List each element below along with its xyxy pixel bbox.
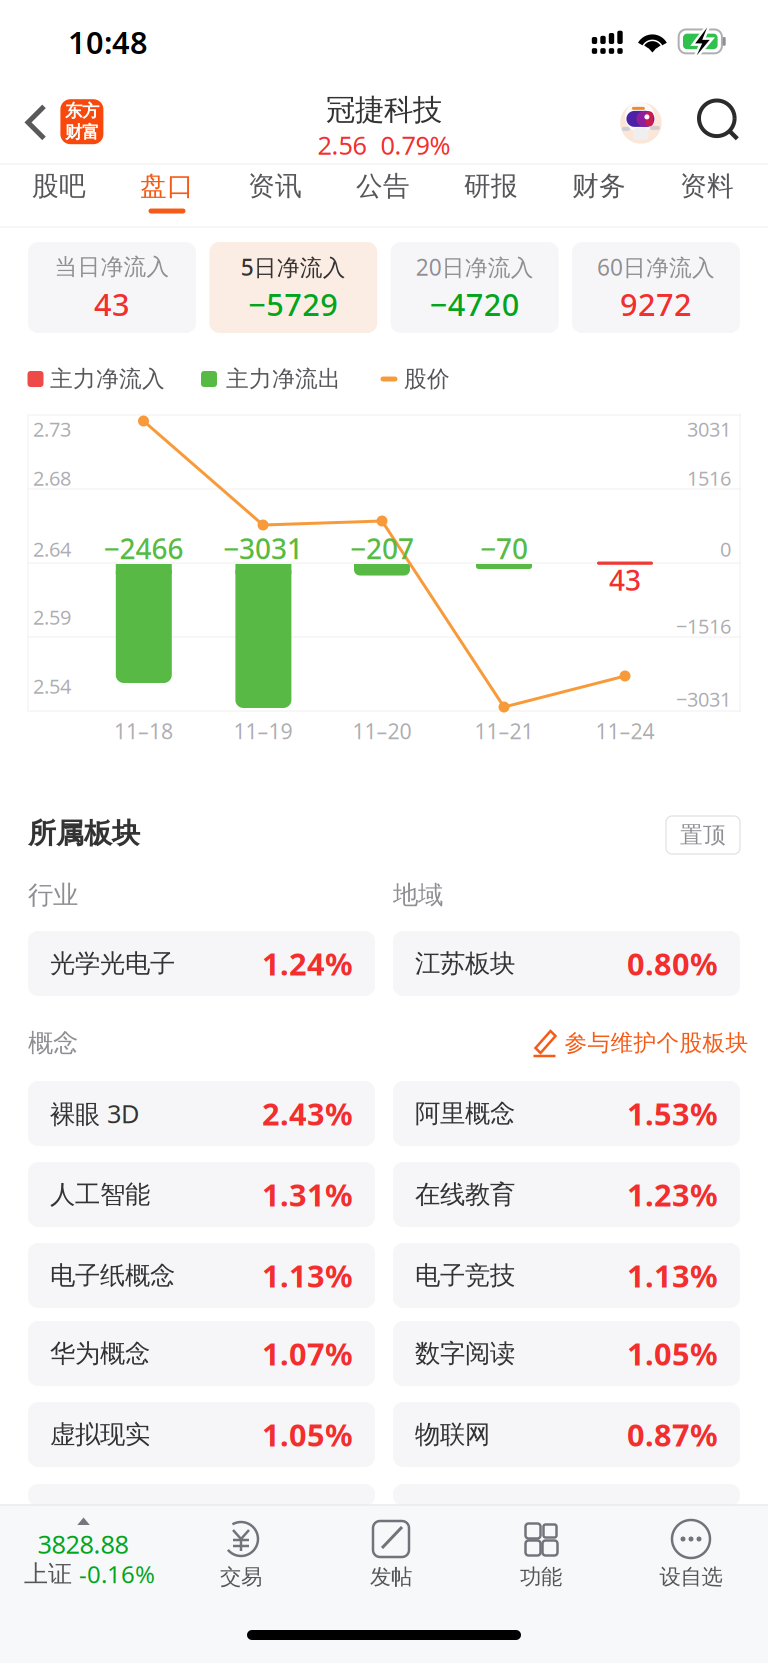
staticText: −2466 bbox=[103, 530, 183, 567]
button[interactable]: 资讯 bbox=[223, 165, 327, 227]
staticText: 电子纸概念 bbox=[50, 1260, 175, 1291]
staticText: 2.54 bbox=[33, 673, 71, 699]
staticText: 资讯 bbox=[248, 170, 302, 202]
staticText: 当日净流入 bbox=[54, 253, 169, 281]
staticText: 5日净流入 bbox=[241, 252, 346, 282]
staticText: 2.68 bbox=[33, 465, 71, 491]
staticText: 财富 bbox=[65, 122, 99, 143]
button[interactable]: 20日净流入 bbox=[391, 242, 559, 333]
button[interactable]: 电子纸概念 bbox=[28, 1243, 375, 1308]
button[interactable]: 人工智能 bbox=[28, 1162, 375, 1227]
button[interactable]: 财务 bbox=[547, 165, 651, 227]
button[interactable]: Shanghai Composite index bbox=[0, 1506, 200, 1606]
button[interactable]: 公告 bbox=[331, 165, 435, 227]
staticText: 江苏板块 bbox=[415, 948, 515, 979]
staticText: 0.80% bbox=[627, 943, 718, 984]
staticText: 地域 bbox=[393, 879, 443, 910]
staticText: 2.56 0.79% bbox=[317, 128, 450, 162]
staticText: 1.23% bbox=[627, 1174, 718, 1215]
button[interactable]: 置顶 bbox=[666, 816, 740, 854]
button[interactable]: 60日净流入 bbox=[572, 242, 740, 333]
staticText: 股价 bbox=[404, 365, 450, 393]
button[interactable]: 研报 bbox=[439, 165, 543, 227]
button[interactable]: Back bbox=[8, 94, 64, 150]
staticText: 主力净流出 bbox=[226, 365, 341, 393]
staticText: 虚拟现实 bbox=[50, 1419, 150, 1450]
staticText: −3031 bbox=[676, 686, 731, 712]
button[interactable]: 虚拟现实 bbox=[28, 1402, 375, 1467]
button[interactable]: 物联网 bbox=[393, 1402, 740, 1467]
button[interactable]: 华为概念 bbox=[28, 1321, 375, 1386]
staticText: 参与维护个股板块 bbox=[564, 1029, 748, 1057]
staticText: 数字阅读 bbox=[415, 1338, 515, 1369]
staticText: 人工智能 bbox=[50, 1179, 150, 1210]
staticText: 华为概念 bbox=[50, 1338, 150, 1369]
staticText: 物联网 bbox=[415, 1419, 490, 1450]
staticText: 1516 bbox=[687, 465, 731, 491]
staticText: 股吧 bbox=[32, 170, 86, 202]
staticText: 9272 bbox=[620, 284, 692, 324]
button[interactable]: 江苏板块 bbox=[393, 931, 740, 996]
staticText: 1.07% bbox=[262, 1333, 353, 1374]
staticText: 概念 bbox=[28, 1027, 78, 1058]
button[interactable]: 功能 bbox=[471, 1508, 611, 1604]
button[interactable]: AI assistant bbox=[613, 95, 669, 151]
staticText: 3828.88 bbox=[37, 1527, 128, 1561]
staticText: 11–24 bbox=[595, 717, 654, 745]
staticText: -0.16% bbox=[79, 1558, 155, 1590]
button[interactable]: 交易 bbox=[171, 1508, 311, 1604]
button[interactable]: 裸眼 3D bbox=[28, 1081, 375, 1146]
staticText: 行业 bbox=[28, 879, 78, 910]
staticText: 在线教育 bbox=[415, 1179, 515, 1210]
button[interactable]: 阿里概念 bbox=[393, 1081, 740, 1146]
staticText: 交易 bbox=[220, 1564, 262, 1590]
staticText: 2.43% bbox=[262, 1093, 353, 1134]
staticText: −3031 bbox=[223, 530, 303, 567]
staticText: 资料 bbox=[680, 170, 734, 202]
staticText: 11–19 bbox=[233, 717, 292, 745]
staticText: 1.31% bbox=[262, 1174, 353, 1215]
button[interactable]: 5日净流入 bbox=[209, 242, 377, 333]
staticText: 1.05% bbox=[627, 1333, 718, 1374]
staticText: 43 bbox=[94, 284, 130, 324]
staticText: 3031 bbox=[687, 416, 731, 442]
staticText: 置顶 bbox=[680, 821, 726, 849]
staticText: 主力净流入 bbox=[50, 365, 165, 393]
button[interactable]: 资料 bbox=[655, 165, 759, 227]
button[interactable]: 发帖 bbox=[321, 1508, 461, 1604]
button[interactable]: 在线教育 bbox=[393, 1162, 740, 1227]
staticText: 2.59 bbox=[33, 604, 71, 630]
button[interactable]: East Money bbox=[60, 99, 103, 144]
staticText: 1.53% bbox=[627, 1093, 718, 1134]
staticText: 发帖 bbox=[370, 1564, 412, 1590]
staticText: 研报 bbox=[464, 170, 518, 202]
button[interactable]: 盘口 bbox=[115, 165, 219, 227]
button[interactable]: 设自选 bbox=[621, 1508, 761, 1604]
staticText: 公告 bbox=[356, 170, 410, 202]
staticText: −4720 bbox=[430, 284, 520, 324]
staticText: 财务 bbox=[572, 170, 626, 202]
staticText: 11–21 bbox=[474, 717, 533, 745]
staticText: 1.24% bbox=[262, 943, 353, 984]
staticText: 20日净流入 bbox=[416, 252, 534, 282]
button[interactable]: 股吧 bbox=[7, 165, 111, 227]
button[interactable]: 数字阅读 bbox=[393, 1321, 740, 1386]
button[interactable]: 电子竞技 bbox=[393, 1243, 740, 1308]
staticText: 10:48 bbox=[68, 22, 148, 62]
staticText: 光学光电子 bbox=[50, 948, 175, 979]
staticText: 2.64 bbox=[33, 536, 71, 562]
staticText: 盘口 bbox=[140, 170, 194, 202]
button[interactable]: 参与维护个股板块 bbox=[531, 1023, 745, 1063]
staticText: 1.05% bbox=[262, 1414, 353, 1455]
staticText: 2.73 bbox=[33, 416, 71, 442]
button[interactable]: Search bbox=[690, 91, 748, 149]
staticText: 60日净流入 bbox=[597, 252, 715, 282]
staticText: −1516 bbox=[676, 613, 731, 639]
staticText: 所属板块 bbox=[28, 816, 140, 851]
staticText: −207 bbox=[350, 530, 414, 567]
button[interactable]: 光学光电子 bbox=[28, 931, 375, 996]
staticText: 冠捷科技 bbox=[326, 92, 442, 128]
button[interactable]: 当日净流入 bbox=[28, 242, 196, 333]
staticText: 1.13% bbox=[262, 1255, 353, 1296]
staticText: 11–18 bbox=[114, 717, 173, 745]
